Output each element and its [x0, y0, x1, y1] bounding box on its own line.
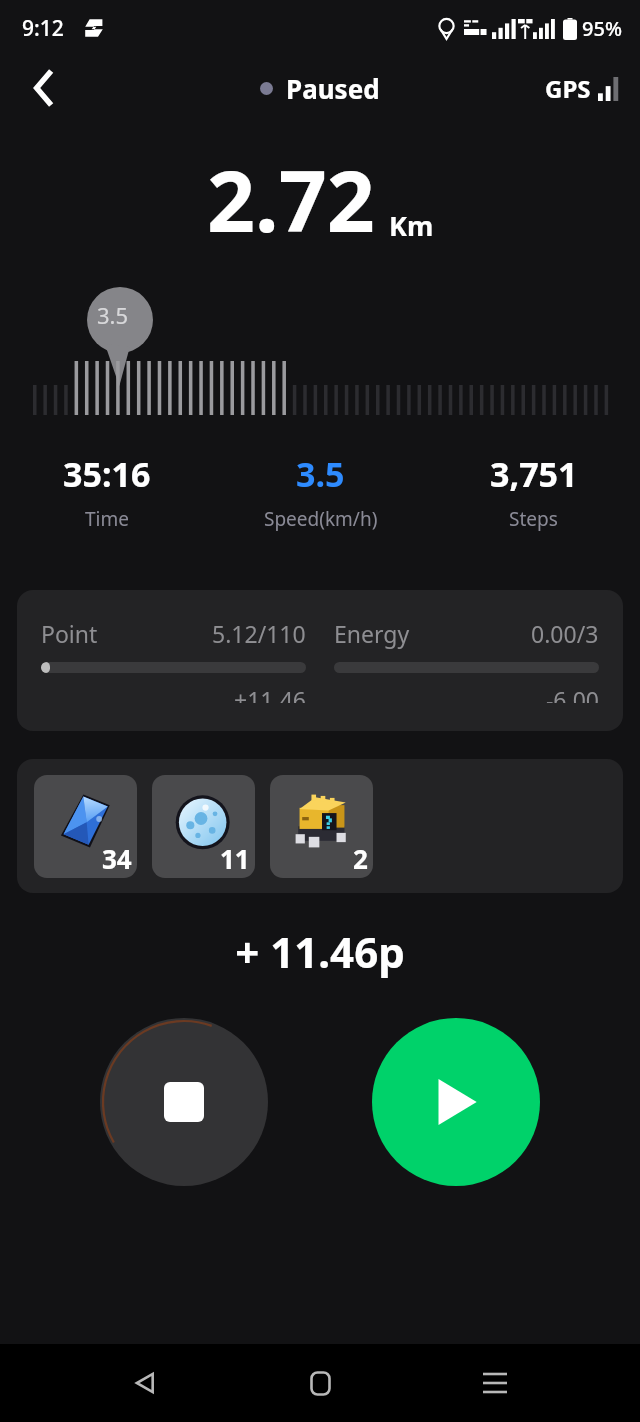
staticText: 95% — [582, 15, 622, 42]
button[interactable]: Item x34 — [34, 775, 137, 878]
staticText: 9:12 — [22, 14, 64, 43]
staticText: Paused — [286, 71, 380, 106]
button[interactable]: GPS signal — [541, 66, 624, 111]
staticText: Speed(km/h) — [264, 506, 378, 532]
button[interactable]: Resume — [372, 1018, 540, 1186]
staticText: 2 — [353, 841, 368, 876]
staticText: 0.00/3 — [531, 618, 599, 649]
staticText: Time — [85, 506, 129, 532]
staticText: + 11.46p — [0, 923, 640, 980]
staticText: 11 — [220, 841, 250, 876]
button[interactable]: Recent apps — [465, 1353, 525, 1413]
button[interactable]: Back — [115, 1353, 175, 1413]
button[interactable]: Item x11 — [152, 775, 255, 878]
button[interactable]: Home — [290, 1353, 350, 1413]
staticText: 2.72 — [207, 142, 375, 256]
button[interactable]: Point — [17, 590, 623, 731]
button[interactable]: Item x2 — [270, 775, 373, 878]
button[interactable]: Back — [18, 61, 72, 115]
button[interactable]: 3,751 — [427, 447, 640, 536]
button[interactable]: Stop — [100, 1018, 268, 1186]
staticText: GPS — [545, 72, 591, 105]
staticText: 3.5 — [296, 451, 345, 497]
button[interactable]: 3.5 — [214, 447, 427, 536]
button[interactable]: 35:16 — [0, 447, 214, 536]
staticText: +11.46 — [41, 684, 306, 703]
staticText: Km — [389, 207, 434, 244]
staticText: -6.00 — [334, 684, 599, 703]
staticText: Energy — [334, 618, 410, 649]
staticText: 34 — [102, 841, 132, 876]
staticText: 5.12/110 — [212, 618, 306, 649]
staticText: 3.5 — [97, 300, 129, 330]
staticText: Point — [41, 618, 98, 649]
staticText: 35:16 — [63, 451, 151, 497]
staticText: 3,751 — [490, 451, 578, 497]
staticText: Steps — [509, 506, 558, 532]
